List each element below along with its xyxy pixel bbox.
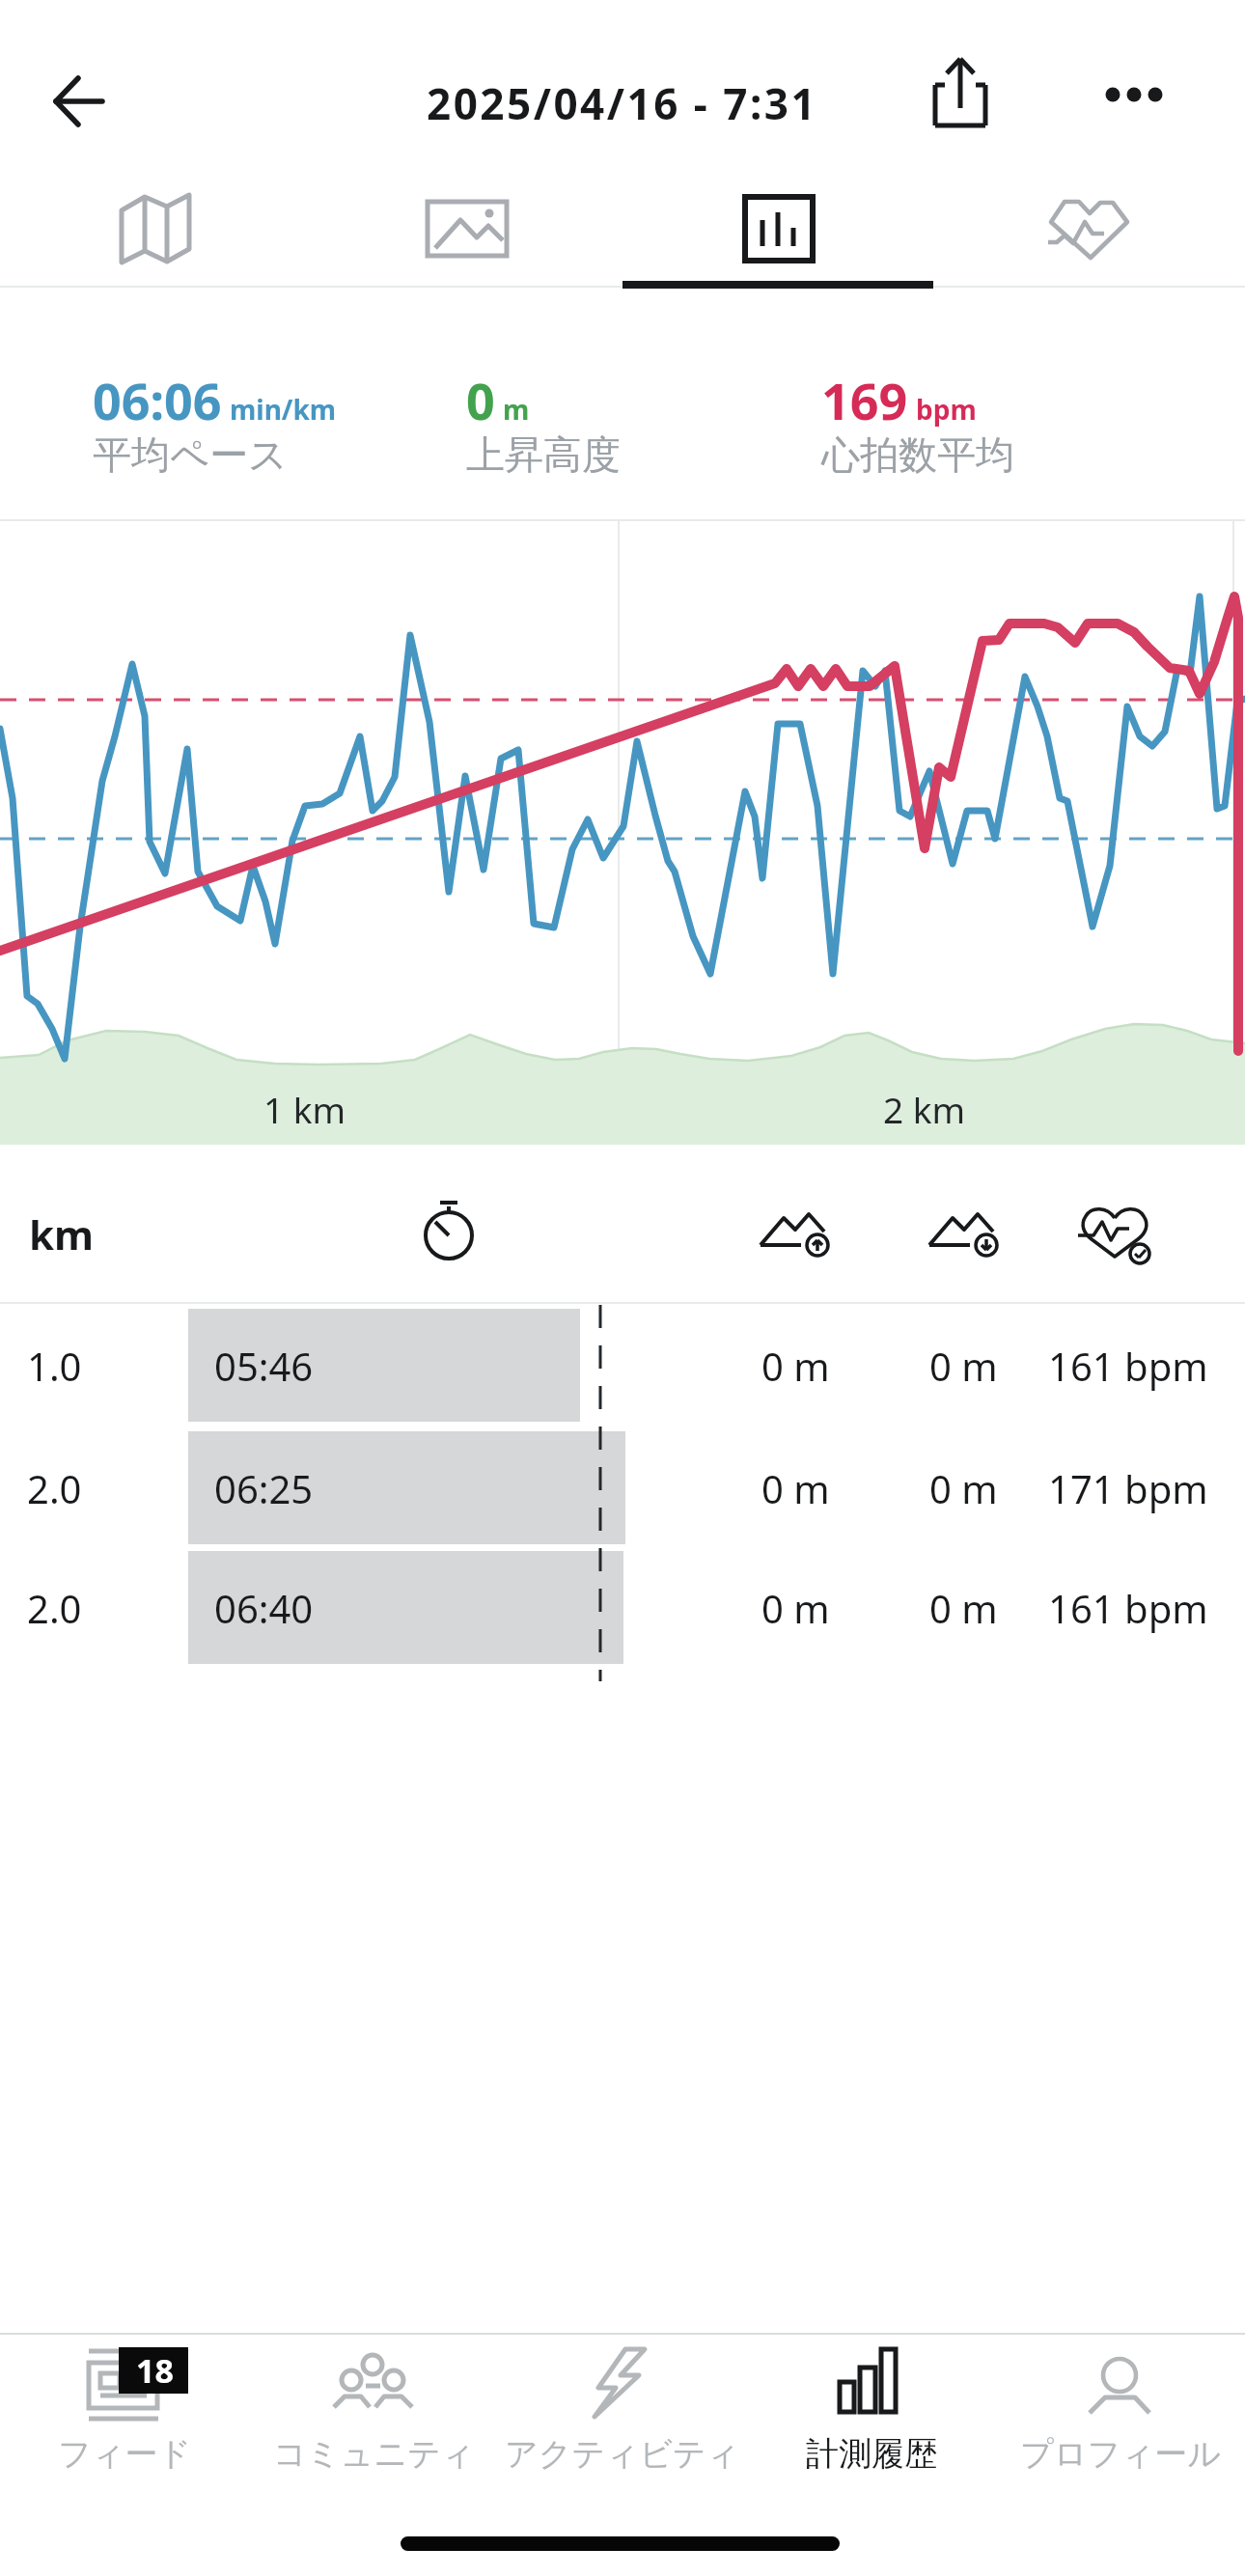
staticText: km [29, 1206, 94, 1261]
staticText: アクティビティ [505, 2433, 740, 2475]
staticText: 0 m [761, 1582, 830, 1634]
button[interactable] [39, 61, 120, 142]
staticText: bpm [916, 391, 977, 428]
staticText: 161 bpm [1048, 1582, 1208, 1634]
button[interactable]: 18 [0, 2335, 249, 2489]
staticText: 169 [821, 366, 908, 434]
staticText: 06:40 [214, 1582, 314, 1634]
button[interactable] [917, 48, 1004, 141]
button[interactable] [311, 172, 622, 286]
staticText: 0 m [761, 1462, 830, 1514]
staticText: 2025/04/16 - 7:31 [427, 74, 818, 132]
staticText: 上昇高度 [466, 430, 621, 479]
staticText: min/km [230, 391, 337, 428]
staticText: 171 bpm [1048, 1462, 1208, 1514]
staticText: フィード [58, 2433, 192, 2475]
staticText: 計測履歴 [806, 2433, 937, 2475]
staticText: 2 km [883, 1085, 966, 1129]
staticText: コミュニティ [273, 2433, 475, 2475]
staticText: 平均ペース [93, 430, 288, 479]
staticText: 06:25 [214, 1462, 314, 1514]
button[interactable]: アクティビティ [498, 2335, 747, 2489]
staticText: 2.0 [27, 1582, 82, 1634]
staticText: m [503, 391, 530, 428]
staticText: 0 m [929, 1462, 998, 1514]
staticText: 0 m [761, 1340, 830, 1392]
staticText: プロフィール [1020, 2433, 1221, 2475]
staticText: 0 [466, 366, 495, 434]
button[interactable]: 計測履歴 [747, 2335, 996, 2489]
staticText: 05:46 [214, 1340, 314, 1392]
staticText: 18 [136, 2348, 174, 2393]
button[interactable]: プロフィール [996, 2335, 1245, 2489]
staticText: 0 m [929, 1340, 998, 1392]
staticText: 1.0 [27, 1340, 82, 1392]
staticText: 06:06 [93, 366, 222, 434]
button[interactable] [0, 172, 311, 286]
button[interactable] [933, 172, 1244, 286]
staticText: 2.0 [27, 1462, 82, 1514]
staticText: 0 m [929, 1582, 998, 1634]
staticText: 1 km [263, 1085, 346, 1129]
button[interactable]: コミュニティ [249, 2335, 498, 2489]
button[interactable] [622, 172, 933, 286]
staticText: 心拍数平均 [821, 430, 1014, 479]
staticText: 161 bpm [1048, 1340, 1208, 1392]
button[interactable] [1091, 58, 1187, 131]
